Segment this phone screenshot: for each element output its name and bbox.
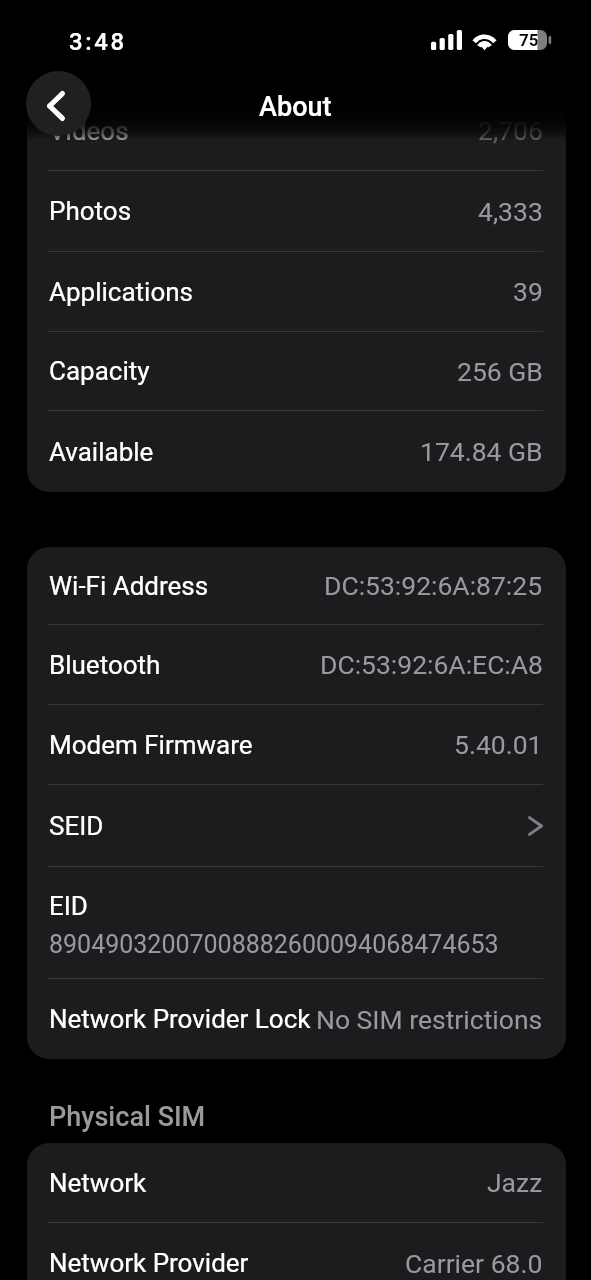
- button[interactable]: SEID: [27, 785, 566, 866]
- staticText: SEID: [49, 811, 104, 841]
- staticText: 75: [519, 30, 539, 50]
- staticText: Capacity: [49, 356, 150, 386]
- staticText: 2,706: [478, 115, 543, 146]
- button[interactable]: Modem Firmware: [27, 705, 566, 784]
- staticText: Applications: [49, 277, 193, 307]
- button[interactable]: Available: [27, 411, 566, 492]
- staticText: Photos: [49, 196, 132, 226]
- staticText: 89049032007008882600094068474653: [49, 930, 499, 959]
- staticText: 4,333: [478, 196, 543, 227]
- staticText: DC:53:92:6A:87:25: [324, 570, 543, 601]
- button[interactable]: Bluetooth: [27, 625, 566, 704]
- staticText: Network: [49, 1168, 147, 1198]
- button[interactable]: Photos: [27, 171, 566, 251]
- staticText: 174.84 GB: [420, 436, 543, 467]
- staticText: Jazz: [487, 1167, 543, 1198]
- staticText: 5.40.01: [454, 729, 543, 760]
- button[interactable]: Back: [26, 71, 91, 136]
- button[interactable]: Network Provider: [27, 1223, 566, 1280]
- staticText: 39: [513, 276, 543, 307]
- staticText: EID: [49, 891, 88, 921]
- button[interactable]: Applications: [27, 252, 566, 331]
- staticText: Network Provider: [49, 1248, 249, 1278]
- staticText: DC:53:92:6A:EC:A8: [320, 649, 543, 680]
- button[interactable]: Network Provider Lock: [27, 979, 566, 1059]
- staticText: Physical SIM: [49, 1101, 206, 1133]
- staticText: Wi-Fi Address: [49, 571, 209, 601]
- staticText: About: [259, 91, 332, 123]
- staticText: Available: [49, 437, 154, 467]
- staticText: Videos: [49, 116, 129, 146]
- staticText: 256 GB: [457, 356, 543, 387]
- button[interactable]: EID: [27, 867, 566, 978]
- staticText: Modem Firmware: [49, 730, 253, 760]
- staticText: 3:48: [69, 28, 127, 56]
- staticText: No SIM restrictions: [316, 1004, 543, 1035]
- button[interactable]: Network: [27, 1143, 566, 1222]
- button[interactable]: Videos: [27, 91, 566, 170]
- button[interactable]: Wi-Fi Address: [27, 547, 566, 624]
- button[interactable]: Capacity: [27, 332, 566, 410]
- staticText: Bluetooth: [49, 650, 161, 680]
- staticText: Carrier 68.0: [405, 1248, 543, 1279]
- staticText: Network Provider Lock: [49, 1004, 311, 1034]
